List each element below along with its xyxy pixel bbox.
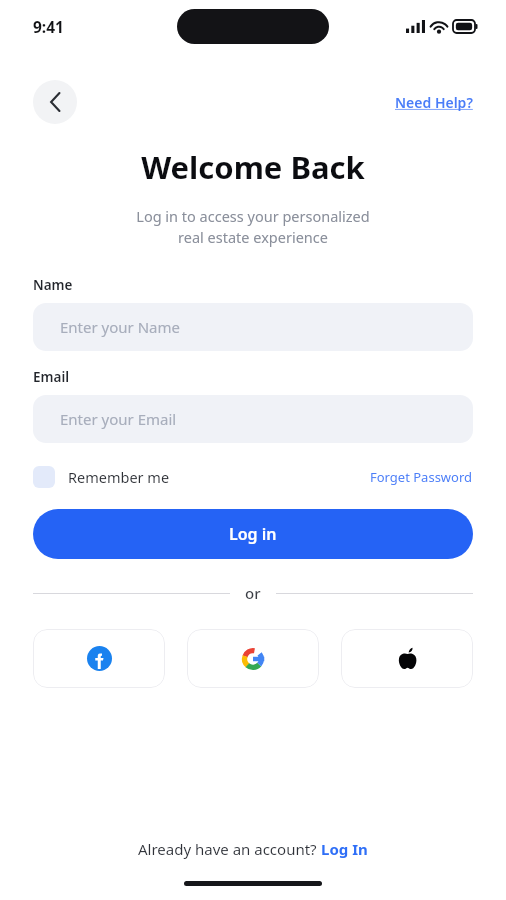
button[interactable]: Sign in with Apple [341,629,473,688]
button[interactable]: Remember me [33,466,170,488]
staticText: Enter your Email [60,409,177,429]
staticText: 9:41 [33,16,64,37]
staticText: Already have an account? [138,839,321,859]
button[interactable]: Log in [33,509,473,559]
button[interactable]: Sign in with Google [187,629,319,688]
staticText: Welcome Back [0,146,506,188]
button[interactable]: Forget Password [370,468,473,486]
button[interactable]: Need Help? [395,93,473,112]
staticText: Forget Password [370,468,473,486]
staticText: Need Help? [395,93,473,112]
staticText: Log in [229,523,277,545]
staticText: Log In [321,839,368,859]
staticText: Email [33,368,70,386]
button[interactable]: Already have an account? [0,839,506,859]
staticText: Enter your Name [60,317,180,337]
button[interactable]: Sign in with Facebook [33,629,165,688]
button[interactable]: Enter your Email [33,395,473,443]
staticText: Remember me [68,467,170,487]
staticText: Name [33,276,73,294]
staticText: Log in to access your personalized real … [34,206,472,248]
staticText: or [245,583,261,603]
button[interactable]: Back [33,80,77,124]
button[interactable]: Enter your Name [33,303,473,351]
